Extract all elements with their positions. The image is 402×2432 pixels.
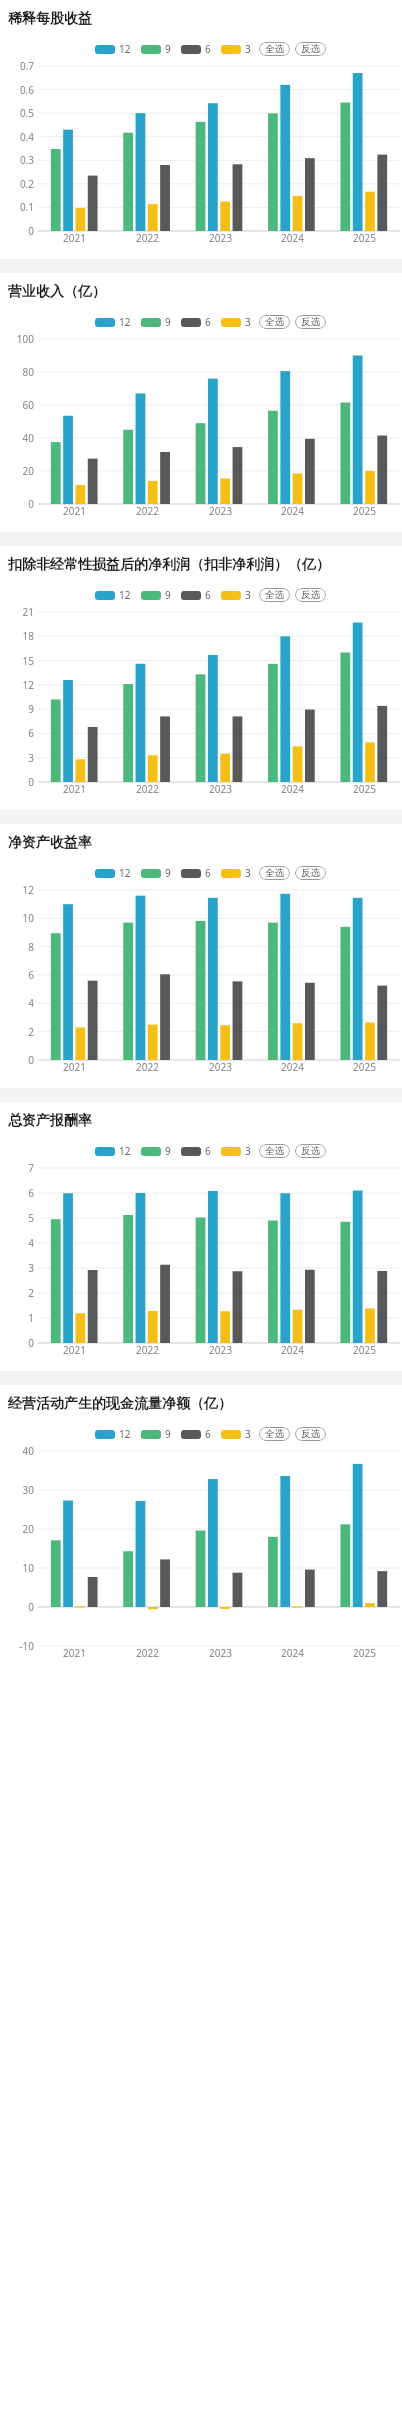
staticText: 30	[22, 1483, 34, 1497]
button[interactable]	[95, 318, 115, 327]
staticText: 3	[28, 751, 34, 765]
staticText: 0	[28, 497, 34, 511]
button[interactable]: 全选	[259, 42, 290, 56]
staticText: 2021	[63, 1060, 86, 1074]
staticText: 2024	[281, 231, 304, 245]
staticText: 全选	[265, 1145, 284, 1157]
staticText: 2023	[209, 782, 232, 796]
staticText: 2022	[136, 504, 159, 518]
staticText: 2025	[353, 1060, 376, 1074]
button[interactable]	[141, 45, 161, 54]
button[interactable]	[221, 869, 241, 878]
staticText: 20	[22, 1522, 34, 1536]
button[interactable]: 全选	[259, 866, 290, 880]
staticText: 全选	[265, 589, 284, 601]
button[interactable]: 全选	[259, 1144, 290, 1158]
button[interactable]: 反选	[295, 42, 326, 56]
staticText: 2	[28, 1286, 34, 1300]
staticText: 2021	[63, 1343, 86, 1357]
staticText: 12	[119, 1144, 131, 1158]
staticText: 2022	[136, 782, 159, 796]
staticText: 6	[205, 588, 211, 602]
staticText: 2024	[281, 1060, 304, 1074]
staticText: 2025	[353, 504, 376, 518]
button[interactable]: 全选	[259, 588, 290, 602]
staticText: 12	[22, 883, 34, 897]
staticText: 3	[245, 866, 251, 880]
staticText: 0.6	[19, 83, 34, 97]
button[interactable]	[95, 591, 115, 600]
staticText: 2021	[63, 504, 86, 518]
staticText: 9	[165, 1427, 171, 1441]
staticText: 0.5	[19, 106, 34, 120]
staticText: 6	[28, 1186, 34, 1200]
button[interactable]	[141, 591, 161, 600]
staticText: 2025	[353, 782, 376, 796]
staticText: 4	[28, 1236, 34, 1250]
staticText: 12	[119, 42, 131, 56]
button[interactable]	[181, 1147, 201, 1156]
button[interactable]	[141, 869, 161, 878]
button[interactable]	[181, 591, 201, 600]
button[interactable]	[95, 1430, 115, 1439]
staticText: 7	[28, 1161, 34, 1175]
button[interactable]: 反选	[295, 1427, 326, 1441]
staticText: 2	[28, 1025, 34, 1039]
staticText: 2023	[209, 1343, 232, 1357]
button[interactable]	[181, 869, 201, 878]
staticText: 经营活动产生的现金流量净额（亿）	[8, 1395, 232, 1413]
staticText: 3	[245, 588, 251, 602]
staticText: 全选	[265, 867, 284, 879]
button[interactable]: 全选	[259, 315, 290, 329]
button[interactable]	[221, 591, 241, 600]
staticText: 18	[22, 629, 34, 643]
staticText: 6	[28, 968, 34, 982]
staticText: 60	[22, 398, 34, 412]
staticText: 6	[205, 315, 211, 329]
button[interactable]: 反选	[295, 1144, 326, 1158]
button[interactable]: 全选	[259, 1427, 290, 1441]
staticText: 0.4	[19, 130, 34, 144]
staticText: 营业收入（亿）	[8, 283, 106, 301]
staticText: 反选	[301, 867, 320, 879]
staticText: 10	[22, 1561, 34, 1575]
staticText: 1	[28, 1311, 34, 1325]
staticText: 2022	[136, 1646, 159, 1660]
button[interactable]	[141, 1147, 161, 1156]
staticText: 2023	[209, 1060, 232, 1074]
button[interactable]	[221, 45, 241, 54]
staticText: 0	[28, 1336, 34, 1350]
button[interactable]	[95, 45, 115, 54]
button[interactable]: 反选	[295, 315, 326, 329]
staticText: 3	[245, 315, 251, 329]
staticText: 6	[205, 42, 211, 56]
staticText: 6	[28, 726, 34, 740]
button[interactable]	[221, 1430, 241, 1439]
button[interactable]	[181, 45, 201, 54]
staticText: 2022	[136, 1343, 159, 1357]
staticText: 9	[165, 866, 171, 880]
button[interactable]	[221, 1147, 241, 1156]
button[interactable]	[181, 318, 201, 327]
staticText: 3	[245, 1144, 251, 1158]
button[interactable]	[95, 869, 115, 878]
staticText: 12	[119, 866, 131, 880]
staticText: 全选	[265, 316, 284, 328]
staticText: 6	[205, 1144, 211, 1158]
staticText: 稀释每股收益	[8, 10, 92, 28]
button[interactable]	[181, 1430, 201, 1439]
button[interactable]: 反选	[295, 866, 326, 880]
staticText: 2025	[353, 1646, 376, 1660]
staticText: 0	[28, 775, 34, 789]
button[interactable]	[141, 318, 161, 327]
button[interactable]	[95, 1147, 115, 1156]
button[interactable]	[221, 318, 241, 327]
staticText: 扣除非经常性损益后的净利润（扣非净利润）（亿）	[8, 556, 330, 574]
button[interactable]: 反选	[295, 588, 326, 602]
button[interactable]	[141, 1430, 161, 1439]
staticText: 15	[22, 654, 34, 668]
staticText: 40	[22, 431, 34, 445]
staticText: 2024	[281, 504, 304, 518]
staticText: 2023	[209, 504, 232, 518]
staticText: 8	[28, 940, 34, 954]
